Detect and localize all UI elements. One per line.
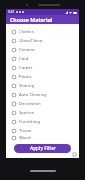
button[interactable]: Wood: [6, 135, 79, 141]
staticText: Choose Material: [10, 16, 53, 23]
staticText: Glass/China: [19, 38, 43, 44]
staticText: Tissue: [19, 128, 32, 134]
staticText: Decoration: [19, 101, 41, 107]
staticText: Spectre: [19, 110, 34, 116]
staticText: Auto Cleaning: [19, 92, 47, 98]
button[interactable]: Decoration: [6, 99, 79, 108]
button[interactable]: Furnishing: [6, 117, 79, 126]
staticText: Plastic: [19, 74, 32, 80]
staticText: Clothes: [19, 29, 34, 35]
staticText: Carpet: [19, 65, 33, 71]
button[interactable]: Auto Cleaning: [6, 90, 79, 99]
staticText: Furnishing: [19, 119, 40, 125]
staticText: Sharing: [19, 83, 35, 89]
staticText: 9:41: [8, 10, 15, 14]
staticText: Card: [19, 56, 29, 62]
staticText: Wood: [19, 135, 31, 141]
button[interactable]: Glass/China: [6, 36, 79, 45]
staticText: Apply Filter: [30, 145, 56, 152]
button[interactable]: Ceramic: [6, 45, 79, 54]
button[interactable]: Carpet: [6, 63, 79, 72]
button[interactable]: Spectre: [6, 108, 79, 117]
button[interactable]: Choose Material: [6, 15, 79, 24]
button[interactable]: Plastic: [6, 72, 79, 81]
button[interactable]: Clothes: [6, 27, 79, 36]
button[interactable]: Tissue: [6, 126, 79, 135]
staticText: Ceramic: [19, 47, 36, 53]
button[interactable]: Card: [6, 54, 79, 63]
button[interactable]: Apply Filter: [14, 144, 71, 153]
button[interactable]: Sharing: [6, 81, 79, 90]
button[interactable]: Scroll to top: [72, 152, 77, 157]
